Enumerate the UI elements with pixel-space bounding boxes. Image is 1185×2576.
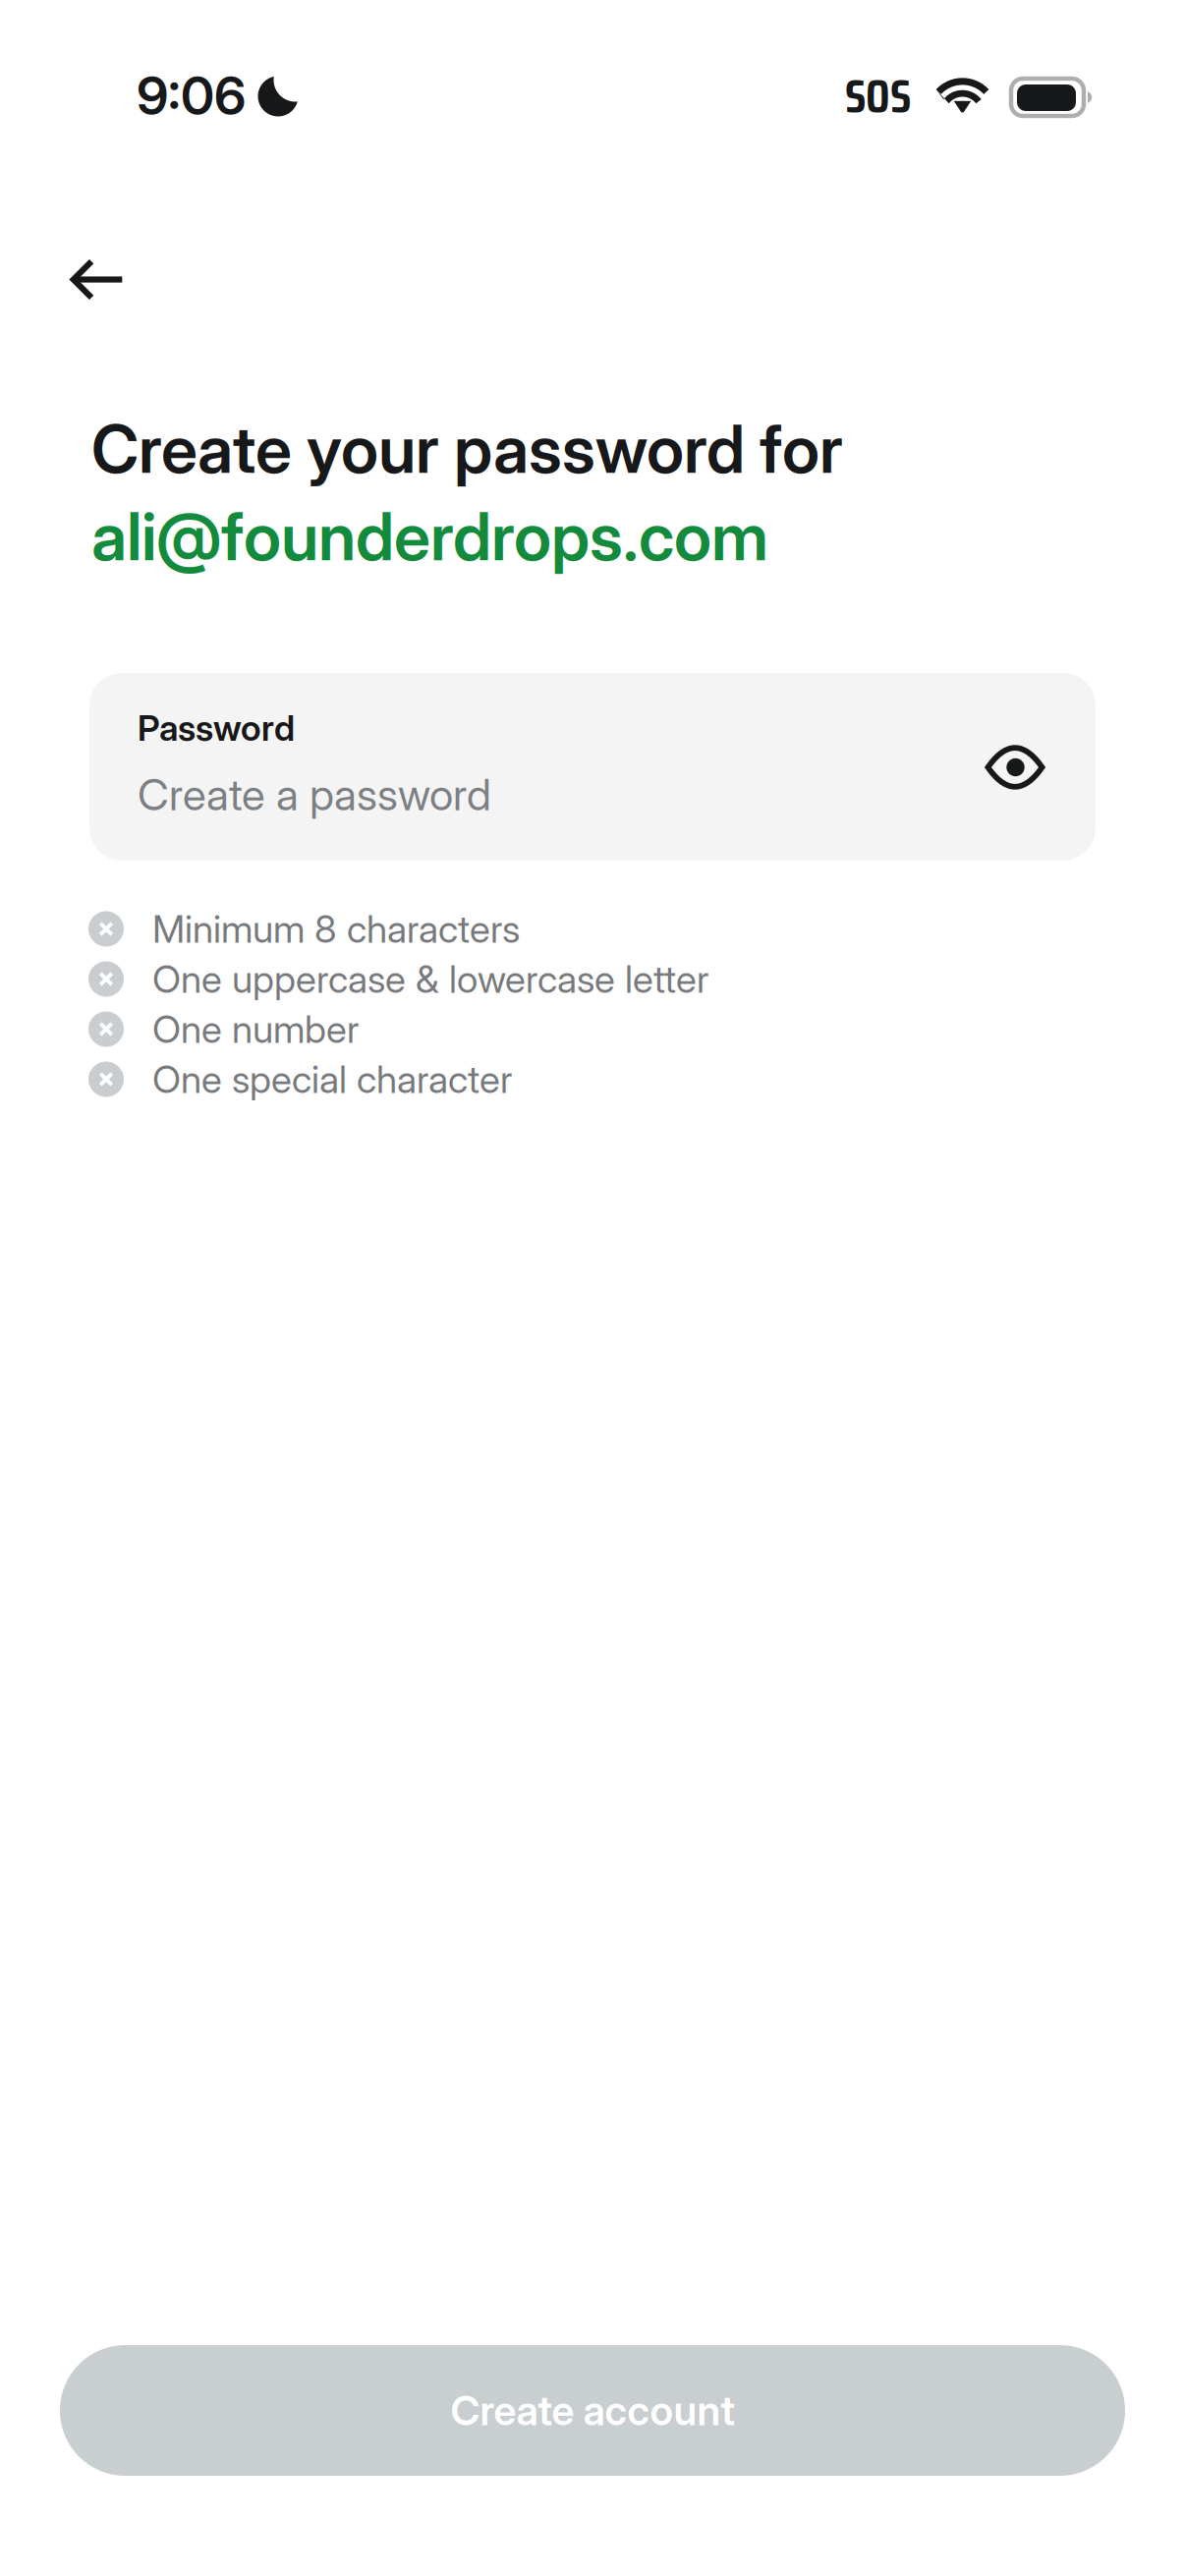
staticText: Create your password for [91, 409, 843, 489]
staticText: Password [138, 706, 295, 749]
staticText: Minimum 8 characters [152, 906, 520, 952]
button[interactable]: Create account [60, 2345, 1125, 2476]
staticText: ali@founderdrops.com [91, 497, 768, 576]
staticText: One uppercase & lowercase letter [152, 956, 708, 1002]
staticText: 9:06 [137, 64, 246, 127]
staticText: One number [152, 1006, 359, 1052]
button[interactable]: Show password [960, 712, 1070, 822]
staticText: SOS [845, 59, 911, 133]
staticText: Create account [451, 2386, 734, 2435]
staticText: Create a password [138, 768, 491, 821]
button[interactable]: Back [36, 218, 159, 341]
button[interactable]: Password [89, 673, 1096, 861]
staticText: One special character [152, 1056, 512, 1102]
